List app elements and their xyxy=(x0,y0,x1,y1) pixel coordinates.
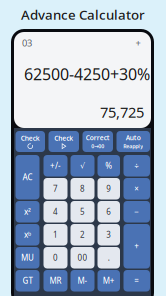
button[interactable]: Check xyxy=(15,131,45,152)
button[interactable]: x² xyxy=(15,201,39,222)
button[interactable]: − xyxy=(123,201,150,222)
staticText: 75,725 xyxy=(100,102,144,122)
button[interactable]: 3 xyxy=(97,224,120,245)
button[interactable]: 00 xyxy=(70,247,94,268)
staticText: × xyxy=(134,183,139,194)
button[interactable]: . xyxy=(97,247,120,268)
button[interactable]: M- xyxy=(70,270,94,291)
button[interactable]: × xyxy=(123,178,150,199)
staticText: ÷ xyxy=(134,160,139,171)
button[interactable]: 2 xyxy=(70,224,94,245)
button[interactable]: +/- xyxy=(43,155,67,176)
staticText: 5 xyxy=(80,206,85,217)
button[interactable]: √ xyxy=(70,155,94,176)
button[interactable]: M+ xyxy=(97,270,120,291)
staticText: 8 xyxy=(80,183,85,194)
button[interactable]: 8 xyxy=(70,178,94,199)
button[interactable]: 1 xyxy=(43,224,67,245)
button[interactable]: AC xyxy=(15,155,39,199)
staticText: MU xyxy=(21,252,34,263)
staticText: 62500-4250+30% xyxy=(24,63,150,85)
button[interactable]: = xyxy=(123,270,150,291)
staticText: x² xyxy=(24,206,31,217)
staticText: Auto xyxy=(126,133,141,142)
staticText: Advance Calculator xyxy=(21,6,145,23)
staticText: = xyxy=(134,275,139,286)
staticText: √ xyxy=(80,161,85,170)
button[interactable]: 9 xyxy=(97,178,120,199)
staticText: 6 xyxy=(106,206,111,217)
button[interactable]: 5 xyxy=(70,201,94,222)
staticText: 4 xyxy=(53,206,58,217)
staticText: Correct xyxy=(86,133,110,142)
button[interactable]: xᵇ xyxy=(15,224,39,245)
button[interactable]: MR xyxy=(43,270,67,291)
button[interactable]: ÷ xyxy=(123,155,150,176)
staticText: GT xyxy=(22,275,32,286)
staticText: 9 xyxy=(106,183,111,194)
staticText: 0 xyxy=(53,252,58,263)
staticText: + xyxy=(135,37,140,49)
staticText: 2 xyxy=(80,229,85,240)
staticText: 00 xyxy=(77,252,87,263)
staticText: 03 xyxy=(22,37,32,49)
staticText: + xyxy=(134,241,139,251)
button[interactable]: 6 xyxy=(97,201,120,222)
button[interactable]: Auto xyxy=(116,131,150,152)
button[interactable]: + xyxy=(123,224,150,268)
button[interactable]: Correct xyxy=(82,131,113,152)
staticText: − xyxy=(134,206,139,217)
button[interactable]: MU xyxy=(15,247,39,268)
staticText: MR xyxy=(49,275,61,286)
staticText: +/- xyxy=(50,160,61,171)
staticText: 1 xyxy=(53,229,58,240)
staticText: AC xyxy=(22,172,32,182)
staticText: M+ xyxy=(103,275,115,286)
staticText: % xyxy=(105,160,112,171)
button[interactable]: 7 xyxy=(43,178,67,199)
staticText: Check xyxy=(21,134,40,143)
button[interactable]: 4 xyxy=(43,201,67,222)
staticText: Check xyxy=(54,134,73,143)
button[interactable]: Check xyxy=(48,131,79,152)
button[interactable]: % xyxy=(97,155,120,176)
button[interactable]: 0 xyxy=(43,247,67,268)
staticText: M- xyxy=(77,275,87,286)
staticText: xᵇ xyxy=(24,229,31,240)
button[interactable]: GT xyxy=(15,270,39,291)
staticText: Reapply xyxy=(123,143,143,150)
staticText: . xyxy=(108,252,110,263)
staticText: 0→00 xyxy=(91,143,104,150)
staticText: 7 xyxy=(53,183,58,194)
staticText: 3 xyxy=(106,229,111,240)
